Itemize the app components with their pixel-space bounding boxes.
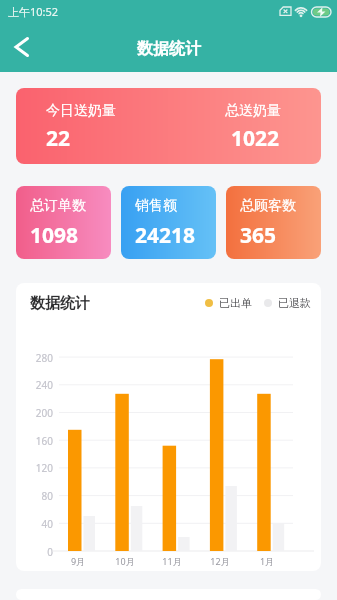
staticText: 22 [46, 124, 71, 153]
staticText: 160 [16, 434, 53, 448]
staticText: 1098 [30, 221, 79, 250]
staticText: 已退款 [278, 296, 311, 310]
staticText: 数据统计 [137, 39, 201, 59]
staticText: 已出单 [219, 296, 252, 310]
staticText: 销售额 [135, 197, 177, 215]
button[interactable]: 总订单数 [16, 186, 111, 259]
staticText: 今日送奶量 [46, 102, 116, 120]
staticText: 80 [16, 489, 53, 503]
staticText: 40 [16, 517, 53, 531]
staticText: 数据统计 [30, 294, 90, 313]
staticText: 200 [16, 406, 53, 420]
button[interactable] [0, 27, 44, 71]
staticText: 总顾客数 [240, 197, 296, 215]
staticText: 1022 [231, 124, 280, 153]
staticText: 365 [240, 221, 277, 250]
staticText: 总送奶量 [225, 102, 281, 120]
staticText: 12月 [206, 555, 234, 567]
button[interactable]: 销售额 [121, 186, 216, 259]
button[interactable]: 今日送奶量 [16, 88, 321, 164]
staticText: 上午10:52 [8, 4, 59, 19]
button[interactable]: 总顾客数 [226, 186, 321, 259]
staticText: 0 [16, 545, 53, 559]
staticText: 总订单数 [30, 197, 86, 215]
staticText: 10月 [111, 555, 139, 567]
staticText: 240 [16, 378, 53, 392]
staticText: 120 [16, 461, 53, 475]
staticText: 24218 [135, 221, 196, 250]
staticText: 11月 [158, 555, 186, 567]
staticText: 9月 [64, 555, 92, 567]
staticText: 280 [16, 351, 53, 365]
staticText: 1月 [253, 555, 281, 567]
